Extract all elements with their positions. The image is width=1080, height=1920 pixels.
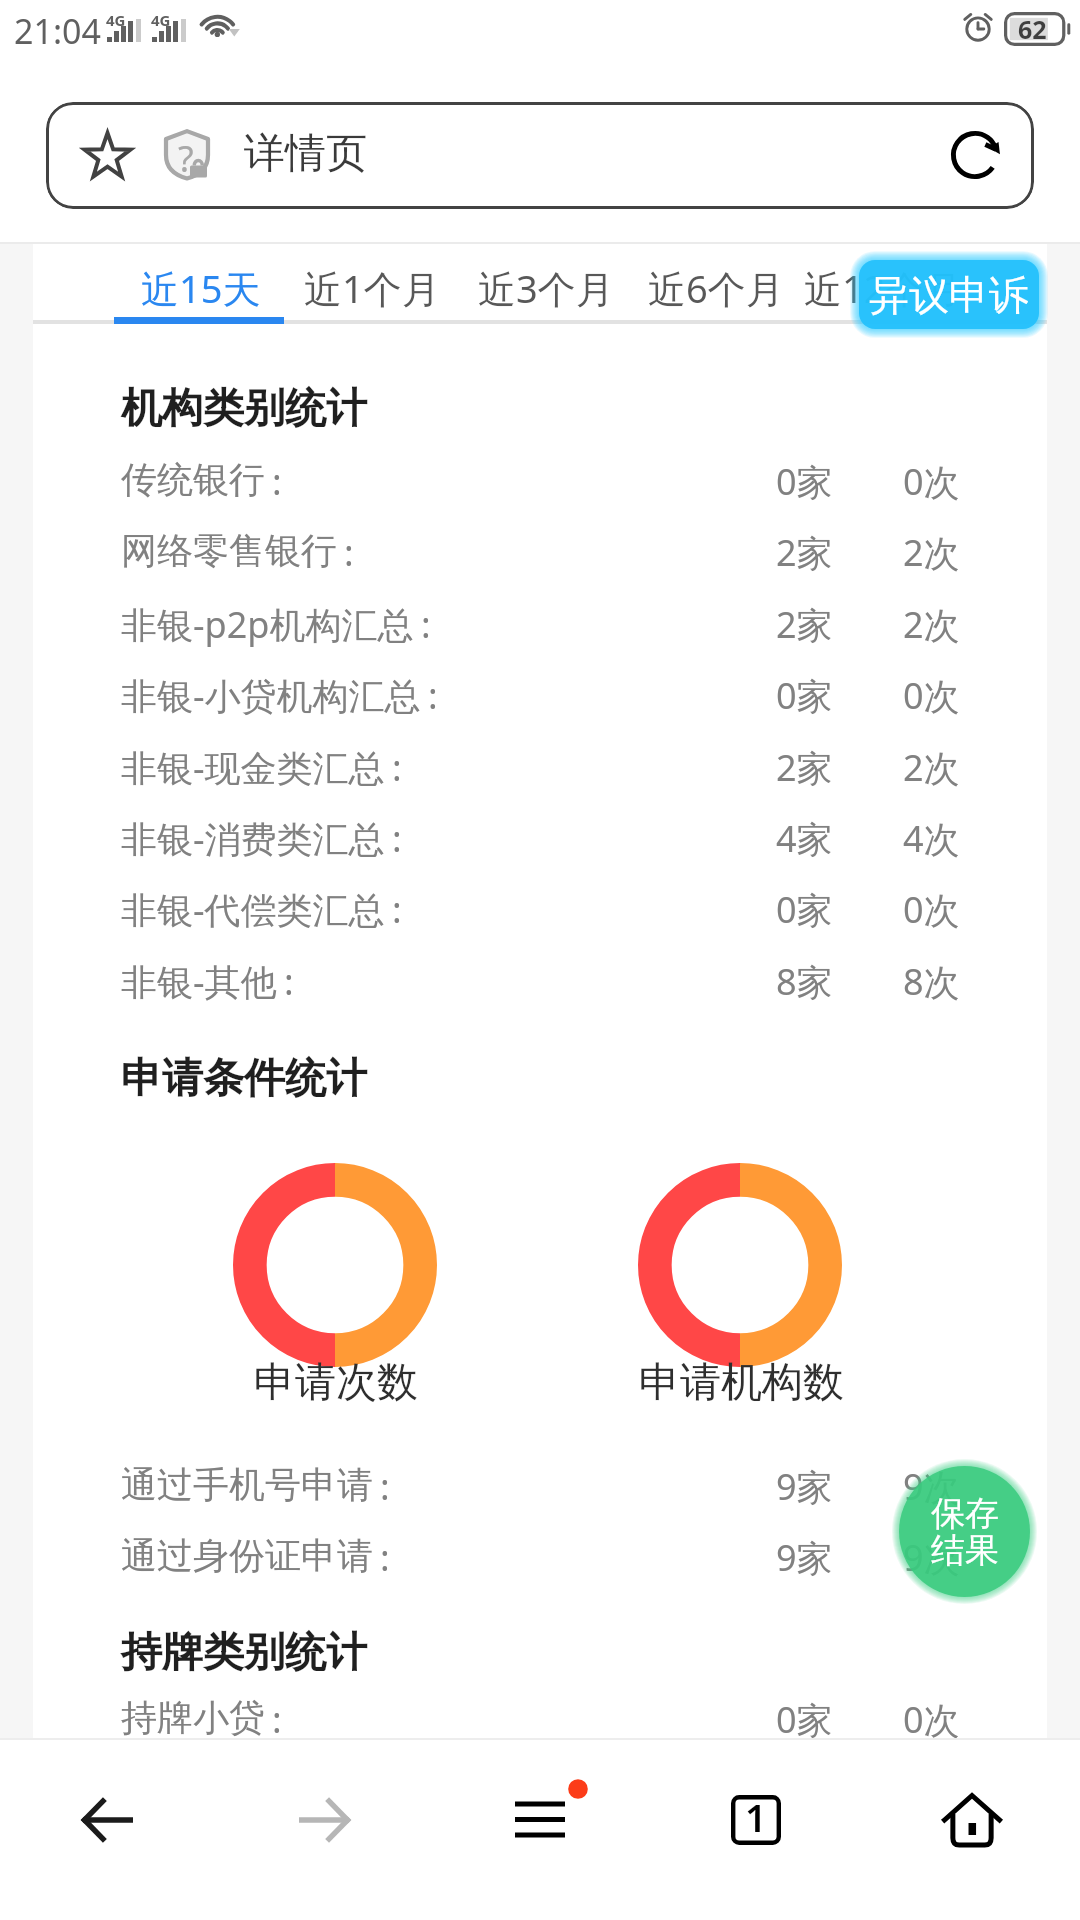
staticText: : (428, 671, 438, 720)
button[interactable]: 近12个月 (782, 252, 984, 320)
staticText: 申请次数 (254, 1357, 418, 1409)
staticText: 传统银行 (121, 457, 265, 502)
staticText: 近15天 (141, 262, 261, 314)
staticText: 0家 (776, 671, 833, 720)
staticText: : (392, 885, 402, 934)
staticText: 8家 (776, 957, 833, 1006)
staticText: 2家 (776, 528, 833, 577)
button[interactable]: 保存 结果 (899, 1466, 1030, 1597)
staticText: : (392, 814, 402, 863)
other: Refresh (946, 126, 1004, 184)
staticText: 通过手机号申请 (121, 1462, 373, 1507)
staticText: 机构类别统计 (121, 383, 367, 435)
staticText: 0次 (903, 671, 960, 720)
staticText: 0家 (776, 885, 833, 934)
staticText: 近12个月 (804, 262, 962, 314)
button[interactable]: Tabs (648, 1740, 864, 1920)
staticText: 非银-p2p机构汇总 (121, 600, 414, 649)
staticText: 62 (1018, 12, 1047, 46)
staticText: : (272, 457, 282, 506)
button[interactable]: 近1个月 (282, 252, 462, 320)
staticText: : (421, 600, 431, 649)
button[interactable]: Bookmark (46, 102, 1034, 209)
staticText: 2家 (776, 600, 833, 649)
other: Bookmark (81, 129, 134, 182)
staticText: 9家 (776, 1462, 833, 1511)
button[interactable]: Menu (432, 1740, 648, 1920)
staticText: 2次 (903, 743, 960, 792)
staticText: 近3个月 (478, 262, 614, 314)
staticText: : (272, 1695, 282, 1744)
button[interactable]: Back (0, 1740, 216, 1920)
staticText: 申请机构数 (639, 1357, 844, 1409)
staticText: 申请条件统计 (121, 1053, 367, 1105)
staticText: : (284, 957, 294, 1006)
staticText: 非银-其他 (121, 957, 277, 1006)
staticText: 2家 (776, 743, 833, 792)
staticText: 非银-现金类汇总 (121, 743, 385, 792)
staticText: 持牌类别统计 (121, 1627, 367, 1679)
staticText: : (392, 743, 402, 792)
staticText: 非银-代偿类汇总 (121, 885, 385, 934)
staticText: 21:04 (14, 8, 101, 54)
staticText: 4家 (776, 814, 833, 863)
button[interactable]: Forward (216, 1740, 432, 1920)
button[interactable]: 近6个月 (626, 252, 806, 320)
staticText: 保存 结果 (931, 1492, 999, 1572)
button[interactable]: Bookmark (60, 106, 155, 205)
staticText: 0家 (776, 457, 833, 506)
button[interactable]: 近15天 (119, 252, 283, 320)
staticText: 近6个月 (648, 262, 784, 314)
staticText: 1 (745, 1791, 767, 1843)
staticText: : (344, 528, 354, 577)
staticText: 网络零售银行 (121, 528, 337, 573)
staticText: 详情页 (244, 128, 367, 180)
staticText: 8次 (903, 957, 960, 1006)
staticText: 4次 (903, 814, 960, 863)
staticText: 非银-消费类汇总 (121, 814, 385, 863)
staticText: 0次 (903, 885, 960, 934)
staticText: 非银-小贷机构汇总 (121, 671, 421, 720)
staticText: 4G (151, 10, 171, 30)
button[interactable]: Home (864, 1740, 1080, 1920)
button[interactable]: Refresh (922, 105, 1027, 204)
staticText: 0家 (776, 1695, 833, 1744)
staticText: : (380, 1533, 390, 1582)
staticText: 4G (106, 10, 126, 30)
staticText: 异议申诉 (869, 270, 1029, 320)
staticText: 近1个月 (304, 262, 440, 314)
staticText: 2次 (903, 600, 960, 649)
staticText: 0次 (903, 1695, 960, 1744)
staticText: : (380, 1462, 390, 1511)
staticText: ? (178, 134, 194, 183)
staticText: 9家 (776, 1533, 833, 1582)
staticText: 0次 (903, 457, 960, 506)
button[interactable]: 异议申诉 (859, 260, 1039, 329)
staticText: 9次 (903, 1533, 960, 1582)
staticText: 通过身份证申请 (121, 1533, 373, 1578)
button[interactable]: 近3个月 (456, 252, 636, 320)
staticText: 持牌小贷 (121, 1695, 265, 1740)
staticText: 2次 (903, 528, 960, 577)
staticText: 9次 (903, 1462, 960, 1511)
